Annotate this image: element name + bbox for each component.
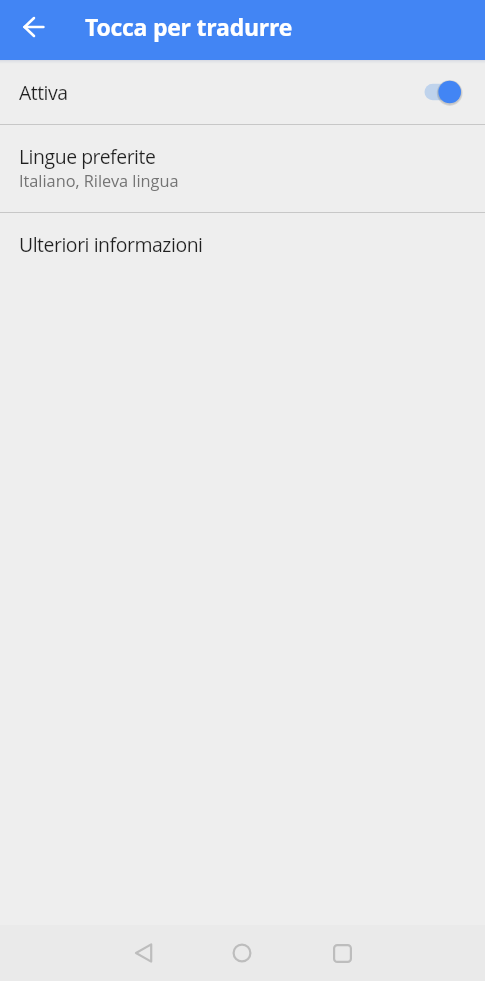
button[interactable]: Attiva (0, 60, 485, 124)
staticText: Attiva (19, 79, 68, 105)
staticText: Ulteriori informazioni (19, 231, 203, 257)
button[interactable]: Panoramica (318, 929, 366, 977)
button[interactable]: Ulteriori informazioni (0, 213, 485, 275)
button[interactable]: Indietro (120, 929, 168, 977)
staticText: Italiano, Rileva lingua (19, 170, 179, 192)
staticText: Tocca per tradurre (85, 11, 293, 42)
button[interactable]: Indietro (0, 0, 54, 53)
staticText: Lingue preferite (19, 143, 156, 169)
button[interactable]: Lingue preferite (0, 125, 485, 212)
button[interactable]: Home (218, 929, 266, 977)
